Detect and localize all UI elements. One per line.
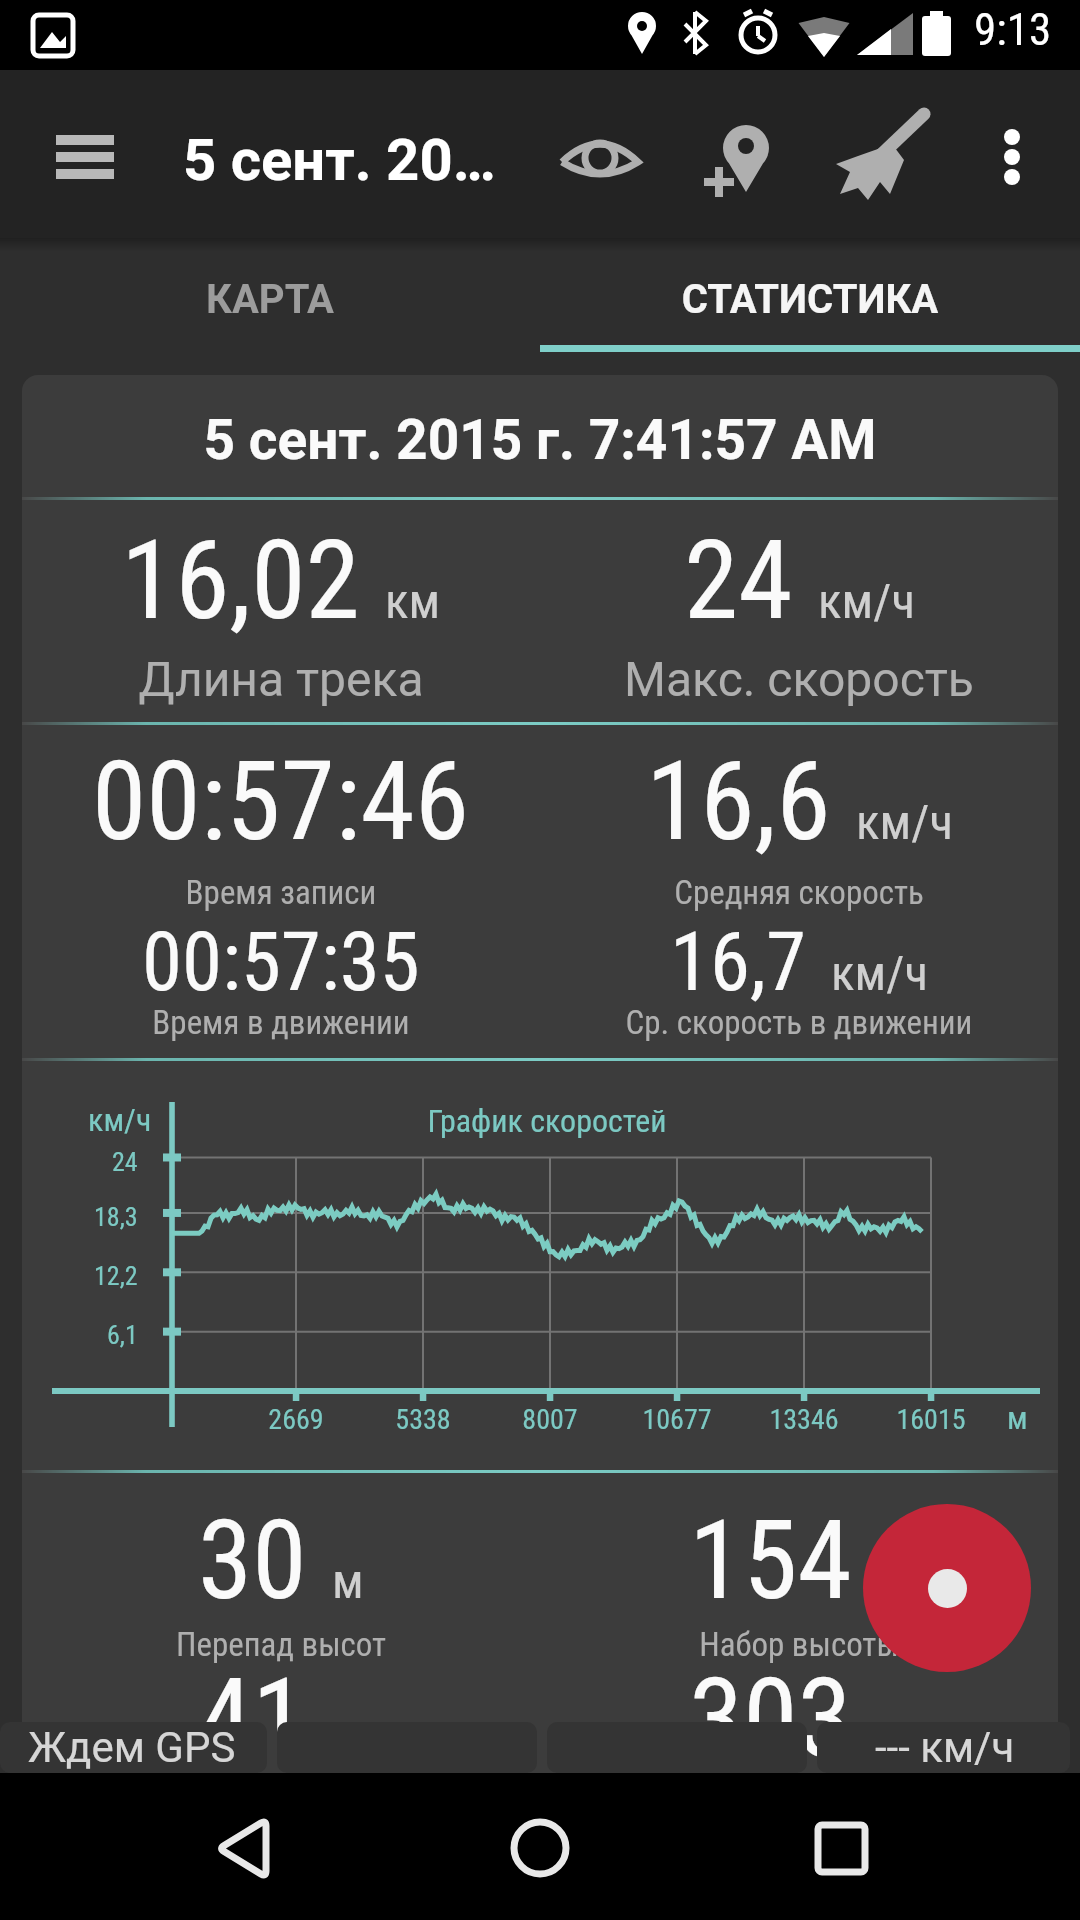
staticText: Время записи [22,873,540,912]
staticText: м [877,1711,909,1768]
button[interactable] [863,1504,1031,1672]
staticText: 30 [198,1496,307,1625]
staticText: 41 [198,1654,307,1775]
staticText: Время в движении [22,1003,540,1042]
staticText: Длина трека [22,651,540,707]
button[interactable] [815,100,945,210]
staticText: км/ч [856,794,953,851]
staticText: 18,3 [94,1202,138,1232]
staticText: 00:57:46 [92,737,470,866]
button[interactable]: КАРТА [0,238,540,375]
staticText: 12,2 [94,1261,138,1291]
staticText: 16015 [841,1403,1021,1436]
button[interactable]: СТАТИСТИКА [540,238,1080,375]
staticText: 16,7 [670,915,806,1010]
staticText: км/ч [831,945,928,1002]
staticText: 5338 [333,1403,513,1436]
staticText: 2669 [206,1403,386,1436]
staticText: Макс. скорость [540,651,1058,707]
staticText: 16,02 [121,516,360,645]
staticText: Ждем GPS [28,1723,236,1772]
button[interactable] [540,100,660,210]
staticText: 9:13 [974,3,1052,56]
button[interactable] [30,110,140,202]
staticText: 154 [689,1496,852,1625]
button[interactable] [675,100,795,210]
staticText: 8007 [460,1403,640,1436]
staticText: СТАТИСТИКА [540,276,1080,323]
staticText: 303 [689,1654,852,1775]
staticText: Перепад высот [22,1625,540,1664]
staticText: м [1007,1399,1028,1437]
staticText: 16,6 [646,737,831,866]
staticText: График скоростей [337,1102,757,1140]
staticText: 13346 [714,1403,894,1436]
staticText: м [332,1711,364,1768]
staticText: км/ч [88,1101,152,1139]
button[interactable] [965,100,1060,210]
staticText: 6,1 [107,1320,138,1350]
staticText: км [385,573,441,630]
button[interactable] [763,1773,918,1920]
staticText: м [332,1553,364,1610]
staticText: 24 [684,516,793,645]
staticText: 00:57:35 [142,915,420,1010]
staticText: Средняя скорость [540,873,1058,912]
staticText: 5 сент. 2015 г. 7:41:57 AM [22,408,1058,472]
staticText: 24 [112,1147,138,1177]
staticText: КАРТА [0,276,540,323]
staticText: км/ч [818,573,915,630]
button[interactable] [165,1773,320,1920]
staticText: Набор высоты [540,1625,1058,1664]
staticText: --- км/ч [875,1723,1015,1772]
staticText: 5 сент. 20… [183,126,496,194]
staticText: 10677 [587,1403,767,1436]
button[interactable] [462,1773,617,1920]
staticText: Ср. скорость в движении [540,1003,1058,1042]
